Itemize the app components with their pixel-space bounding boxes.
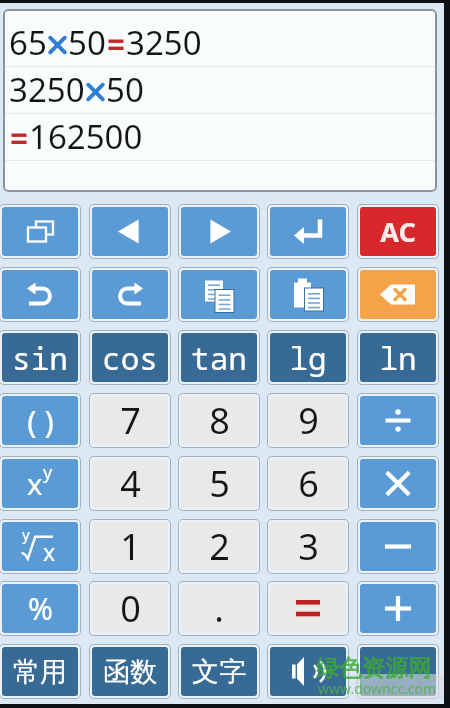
staticText: .: [214, 584, 224, 633]
button[interactable]: Copy: [181, 270, 257, 319]
staticText: ( ): [27, 400, 54, 442]
staticText: y: [22, 524, 30, 544]
button[interactable]: 4: [92, 459, 168, 508]
staticText: 0: [120, 584, 141, 633]
button[interactable]: Move right: [181, 207, 257, 256]
button[interactable]: cos: [92, 333, 168, 382]
button[interactable]: 0: [92, 584, 168, 633]
staticText: 3250: [126, 20, 202, 65]
staticText: AC: [380, 213, 416, 250]
staticText: tan: [191, 337, 247, 379]
staticText: 2: [209, 522, 230, 571]
staticText: 常用: [13, 655, 67, 689]
button[interactable]: AC: [360, 207, 436, 256]
button[interactable]: 文字: [181, 647, 257, 696]
staticText: www.downcc.com: [318, 679, 437, 698]
button[interactable]: Paste: [270, 270, 346, 319]
button[interactable]: 2: [181, 522, 257, 571]
button[interactable]: x to the power of y: [2, 459, 78, 508]
staticText: %: [28, 588, 53, 629]
staticText: 3: [298, 522, 319, 571]
button[interactable]: lg: [270, 333, 346, 382]
staticText: 8: [209, 396, 230, 445]
staticText: 5: [209, 459, 230, 508]
staticText: cos: [102, 337, 158, 379]
button[interactable]: Undo: [2, 270, 78, 319]
staticText: x: [43, 536, 56, 567]
staticText: x: [27, 464, 43, 503]
button[interactable]: 函数: [92, 647, 168, 696]
button[interactable]: ( ): [2, 396, 78, 445]
button[interactable]: tan: [181, 333, 257, 382]
button[interactable]: Redo: [92, 270, 168, 319]
button[interactable]: 3: [270, 522, 346, 571]
button[interactable]: y-th root of x: [2, 522, 78, 571]
button[interactable]: 7: [92, 396, 168, 445]
staticText: 文字: [192, 655, 246, 689]
staticText: ln: [379, 337, 417, 379]
button[interactable]: Multiply: [360, 459, 436, 508]
staticText: sin: [12, 337, 68, 379]
staticText: 7: [120, 396, 141, 445]
button[interactable]: 常用: [2, 647, 78, 696]
button[interactable]: 1: [92, 522, 168, 571]
staticText: 6: [298, 459, 319, 508]
button[interactable]: 9: [270, 396, 346, 445]
staticText: 162500: [29, 114, 143, 159]
button[interactable]: 8: [181, 396, 257, 445]
button[interactable]: Sound: [270, 647, 346, 696]
button[interactable]: Divide: [360, 396, 436, 445]
button[interactable]: 6: [270, 459, 346, 508]
button[interactable]: %: [2, 584, 78, 633]
staticText: y: [43, 460, 53, 485]
staticText: 50: [68, 20, 106, 65]
button[interactable]: Equals: [270, 584, 346, 633]
button[interactable]: Windows: [2, 207, 78, 256]
button[interactable]: ln: [360, 333, 436, 382]
staticText: 3250: [9, 67, 85, 112]
staticText: 65: [9, 20, 47, 65]
button[interactable]: Plus: [360, 584, 436, 633]
staticText: 1: [120, 522, 141, 571]
button[interactable]: Backspace: [360, 270, 436, 319]
staticText: lg: [289, 337, 327, 379]
staticText: 4: [120, 459, 141, 508]
button[interactable]: .: [181, 584, 257, 633]
button[interactable]: Enter: [270, 207, 346, 256]
staticText: 函数: [103, 655, 157, 689]
button[interactable]: Move left: [92, 207, 168, 256]
button[interactable]: 5: [181, 459, 257, 508]
staticText: 9: [298, 396, 319, 445]
button[interactable]: Minus: [360, 522, 436, 571]
button[interactable]: sin: [2, 333, 78, 382]
staticText: 绿色资源网: [316, 654, 431, 683]
button[interactable]: More: [360, 647, 436, 696]
staticText: 50: [106, 67, 144, 112]
